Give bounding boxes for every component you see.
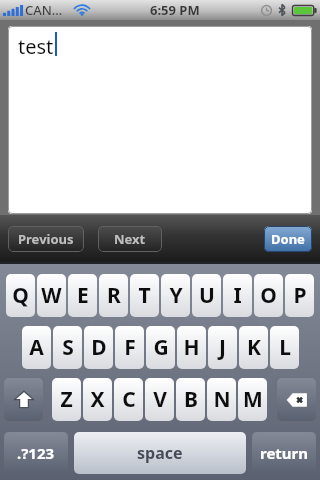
staticText: A — [29, 333, 44, 362]
button[interactable]: C — [114, 378, 143, 421]
button[interactable]: Q — [6, 274, 35, 317]
staticText: Y — [169, 281, 183, 310]
button[interactable]: test — [8, 26, 312, 214]
staticText: W — [41, 281, 62, 310]
staticText: Next — [114, 230, 146, 248]
button[interactable]: Previous — [8, 226, 84, 252]
button[interactable]: M — [238, 378, 267, 421]
staticText: space — [137, 442, 183, 464]
staticText: K — [247, 333, 261, 362]
staticText: J — [219, 333, 226, 362]
staticText: O — [260, 281, 277, 310]
staticText: N — [213, 385, 231, 414]
button[interactable]: Y — [161, 274, 190, 317]
staticText: T — [138, 281, 151, 310]
button[interactable]: S — [53, 326, 82, 369]
button[interactable]: .?123 — [4, 432, 68, 474]
staticText: C — [122, 385, 136, 414]
staticText: M — [243, 385, 263, 414]
staticText: P — [293, 281, 307, 310]
staticText: D — [91, 333, 107, 362]
staticText: 6:59 PM — [150, 1, 200, 19]
staticText: Z — [60, 385, 73, 414]
button[interactable]: B — [176, 378, 205, 421]
button[interactable]: J — [208, 326, 237, 369]
staticText: U — [199, 281, 215, 310]
button[interactable]: L — [270, 326, 299, 369]
staticText: test — [18, 33, 54, 60]
staticText: L — [279, 333, 291, 362]
button[interactable]: K — [239, 326, 268, 369]
staticText: R — [107, 281, 121, 310]
staticText: V — [153, 385, 167, 414]
staticText: S — [62, 333, 74, 362]
button[interactable]: return — [252, 432, 316, 474]
button[interactable]: O — [254, 274, 283, 317]
button[interactable]: space — [74, 432, 246, 474]
button[interactable]: U — [192, 274, 221, 317]
button[interactable]: D — [84, 326, 113, 369]
button[interactable]: V — [145, 378, 174, 421]
button[interactable]: I — [223, 274, 252, 317]
button[interactable]: H — [177, 326, 206, 369]
staticText: I — [233, 281, 242, 310]
staticText: Done — [271, 230, 305, 248]
staticText: CAN… — [25, 1, 63, 19]
button[interactable]: X — [83, 378, 112, 421]
staticText: X — [90, 385, 105, 414]
staticText: F — [124, 333, 136, 362]
staticText: E — [77, 281, 89, 310]
staticText: Previous — [18, 230, 74, 248]
staticText: Q — [12, 281, 29, 310]
staticText: H — [183, 333, 200, 362]
button[interactable]: G — [146, 326, 175, 369]
button[interactable]: E — [68, 274, 97, 317]
staticText: return — [260, 443, 309, 463]
button[interactable]: W — [37, 274, 66, 317]
staticText: B — [184, 385, 198, 414]
staticText: G — [153, 333, 169, 362]
button[interactable]: T — [130, 274, 159, 317]
button[interactable]: Next — [98, 226, 162, 252]
button[interactable]: P — [285, 274, 314, 317]
button[interactable]: R — [99, 274, 128, 317]
button[interactable]: N — [207, 378, 236, 421]
button[interactable]: Z — [52, 378, 81, 421]
staticText: .?123 — [17, 443, 55, 463]
button[interactable]: Done — [264, 226, 312, 252]
button[interactable]: Delete — [277, 378, 316, 421]
button[interactable]: A — [22, 326, 51, 369]
button[interactable]: F — [115, 326, 144, 369]
button[interactable]: Shift — [4, 378, 43, 421]
